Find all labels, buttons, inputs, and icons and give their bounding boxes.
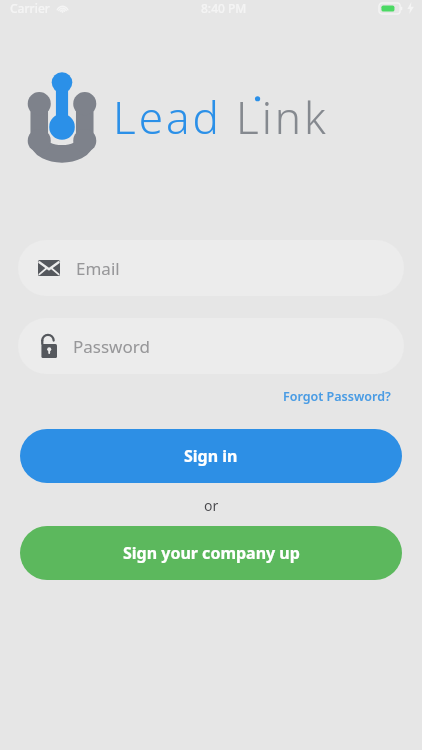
staticText: Carrier [10,0,50,16]
staticText: 8:40 PM [201,0,247,16]
button[interactable]: Sign in [20,429,402,483]
staticText: Password [73,335,150,358]
button[interactable]: Forgot Password? [280,384,394,409]
button[interactable]: Sign your company up [20,526,402,580]
button[interactable]: Password [18,318,404,374]
staticText: Link [236,87,329,147]
staticText: Lead [113,87,222,147]
button[interactable]: Email [18,240,404,296]
staticText: Forgot Password? [283,388,391,405]
staticText: Email [76,257,120,280]
staticText: or [204,496,219,515]
other: Lead Link logo [27,74,97,160]
staticText: Sign in [184,445,238,467]
staticText: Sign your company up [123,542,300,564]
